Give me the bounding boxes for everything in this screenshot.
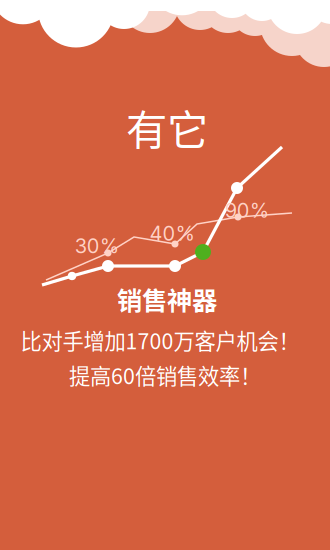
staticText: 40% [149, 221, 194, 246]
staticText: 提高60倍销售效率！ [69, 360, 261, 390]
staticText: 销售神器 [117, 281, 217, 317]
staticText: 有它 [126, 97, 208, 157]
staticText: 90% [225, 198, 269, 223]
staticText: 30% [75, 234, 119, 258]
staticText: 比对手增加1700万客户机会！ [20, 325, 299, 355]
